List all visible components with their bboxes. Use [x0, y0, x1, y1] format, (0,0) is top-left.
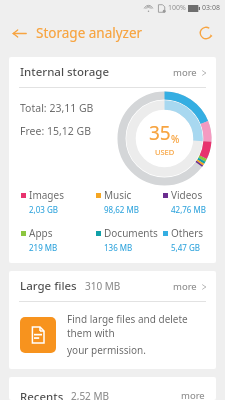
button[interactable]: Images — [21, 188, 96, 215]
staticText: Images — [29, 188, 64, 202]
staticText: % — [171, 132, 180, 146]
button[interactable]: Apps — [21, 226, 96, 253]
staticText: Recents — [20, 389, 64, 400]
staticText: Find large files and delete them with — [67, 312, 206, 340]
staticText: 219 MB — [29, 242, 58, 253]
button[interactable]: more — [163, 274, 216, 299]
button[interactable]: Music — [96, 188, 163, 215]
button[interactable]: Videos — [163, 188, 208, 215]
button[interactable]: Documents — [96, 226, 163, 253]
staticText: 35 — [149, 120, 171, 146]
button[interactable]: Refresh — [193, 20, 219, 46]
button[interactable]: Find large files and delete them with — [9, 302, 216, 369]
button[interactable]: more — [163, 60, 216, 85]
staticText: more — [181, 389, 205, 400]
staticText: 310 MB — [85, 279, 121, 293]
staticText: Internal storage — [20, 64, 109, 80]
staticText: 2,03 GB — [29, 204, 58, 215]
staticText: more — [173, 66, 197, 79]
staticText: USED — [155, 147, 175, 157]
staticText: Total: 23,11 GB — [20, 101, 94, 115]
staticText: Apps — [29, 226, 53, 240]
staticText: 98,62 MB — [104, 204, 139, 215]
staticText: 03:08 — [202, 3, 220, 13]
staticText: 2,52 MB — [71, 389, 110, 400]
staticText: 100% — [168, 3, 186, 13]
button[interactable]: Others — [163, 226, 208, 253]
staticText: 136 MB — [104, 242, 133, 253]
button[interactable]: Recents — [9, 377, 216, 400]
staticText: more — [173, 280, 197, 293]
staticText: Others — [171, 226, 204, 240]
staticText: Storage analyzer — [36, 24, 143, 42]
staticText: your permission. — [67, 343, 146, 357]
staticText: Documents — [104, 226, 158, 240]
staticText: 42,76 MB — [171, 204, 206, 215]
staticText: Music — [104, 188, 132, 202]
button[interactable]: Back — [6, 20, 32, 46]
staticText: Large files — [20, 278, 77, 294]
staticText: Free: 15,12 GB — [20, 124, 92, 138]
staticText: Videos — [171, 188, 203, 202]
staticText: 5,47 GB — [171, 242, 200, 253]
